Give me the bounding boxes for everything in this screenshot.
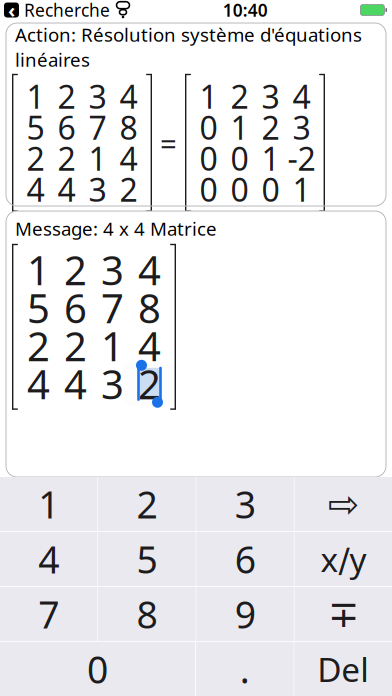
staticText: Action: Résolution système d'équations l… [15,22,362,72]
button[interactable]: 5 [98,532,195,586]
staticText: 0 [199,168,217,210]
staticText: . [240,644,250,694]
staticText: 2 [64,319,87,372]
staticText: 7 [101,281,124,334]
button[interactable]: . [196,642,293,696]
button[interactable]: 3 [196,477,294,531]
staticText: 1 [261,137,279,179]
staticText: Message: 4 x 4 Matrice [15,216,217,241]
staticText: 6 [235,534,256,584]
staticText: 1 [230,106,248,148]
staticText: 4 [292,75,310,117]
staticText: 3 [235,479,256,529]
button[interactable]: 6 [196,532,294,586]
staticText: 1 [27,243,50,296]
staticText: 1 [199,75,217,117]
staticText: 7 [88,106,106,148]
staticText: 4 [26,168,44,210]
staticText: 5 [136,534,157,584]
staticText: 0 [199,137,217,179]
staticText: 1 [88,137,106,179]
staticText: 0 [199,106,217,148]
staticText: 4 [38,534,59,584]
button[interactable]: ∓ [295,587,392,641]
staticText: 2 [27,319,50,372]
staticText: 0 [230,168,248,210]
button[interactable]: ⇨ [295,477,392,531]
button[interactable]: x∕y [295,532,392,586]
staticText: 7 [38,589,59,639]
staticText: ‹ [8,0,15,23]
staticText: 0 [87,644,108,694]
staticText: 2 [261,106,279,148]
staticText: 2 [57,75,75,117]
staticText: 2 [26,137,44,179]
staticText: = [160,123,177,162]
button[interactable]: Del [294,642,392,696]
staticText: ⇨ [328,483,359,525]
button[interactable]: 7 [0,587,97,641]
button[interactable]: 4 [0,532,97,586]
staticText: 3 [101,243,124,296]
button[interactable]: 2 [98,477,195,531]
staticText: 8 [138,281,161,334]
button[interactable]: 1 [0,477,97,531]
staticText: Del [317,647,369,691]
staticText: 3 [88,168,106,210]
staticText: 4 [27,357,50,410]
staticText: 2 [138,357,161,410]
staticText: -2 [287,137,315,179]
staticText: 1 [101,319,124,372]
staticText: x∕y [320,537,366,581]
staticText: 2 [230,75,248,117]
staticText: 0 [261,168,279,210]
staticText: 3 [101,357,124,410]
staticText: 2 [136,479,157,529]
button[interactable]: 9 [196,587,294,641]
staticText: 1 [292,168,310,210]
button[interactable]: 0 [0,642,195,696]
staticText: 2 [57,137,75,179]
staticText: 10:40 [223,0,268,21]
staticText: 3 [292,106,310,148]
staticText: 5 [27,281,50,334]
staticText: 4 [119,75,137,117]
staticText: 8 [119,106,137,148]
staticText: 6 [64,281,87,334]
staticText: 9 [235,589,256,639]
staticText: 0 [230,137,248,179]
staticText: 6 [57,106,75,148]
staticText: 3 [88,75,106,117]
staticText: 1 [38,479,59,529]
staticText: 5 [26,106,44,148]
staticText: 8 [136,589,157,639]
staticText: 4 [119,137,137,179]
staticText: Recherche [24,0,110,21]
staticText: 4 [64,357,87,410]
button[interactable]: 8 [98,587,195,641]
staticText: ∓ [328,593,359,635]
staticText: 4 [57,168,75,210]
staticText: 4 [138,319,161,372]
staticText: 3 [261,75,279,117]
button[interactable]: Back to Recherche [4,0,110,23]
staticText: 2 [119,168,137,210]
staticText: 2 [64,243,87,296]
staticText: 1 [26,75,44,117]
staticText: 4 [138,243,161,296]
